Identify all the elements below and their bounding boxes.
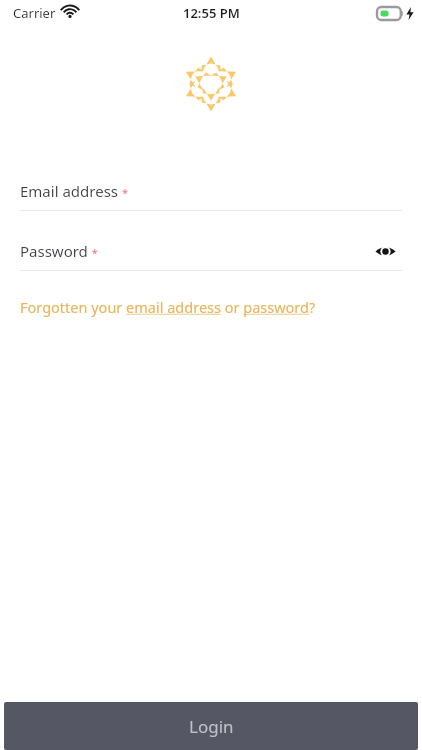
staticText: Login [189,715,234,738]
button[interactable]: Forgotten your email address or password… [20,297,316,317]
button[interactable]: Password * [0,232,422,271]
button[interactable]: Login [4,702,418,750]
staticText: Password * [20,241,98,261]
staticText: 12:55 PM [183,4,240,22]
staticText: Carrier [13,4,56,22]
staticText: Forgotten your email address or password… [20,297,316,317]
button[interactable]: Email address * [0,172,422,211]
button[interactable]: Show password [368,234,402,268]
staticText: Email address * [20,181,128,201]
